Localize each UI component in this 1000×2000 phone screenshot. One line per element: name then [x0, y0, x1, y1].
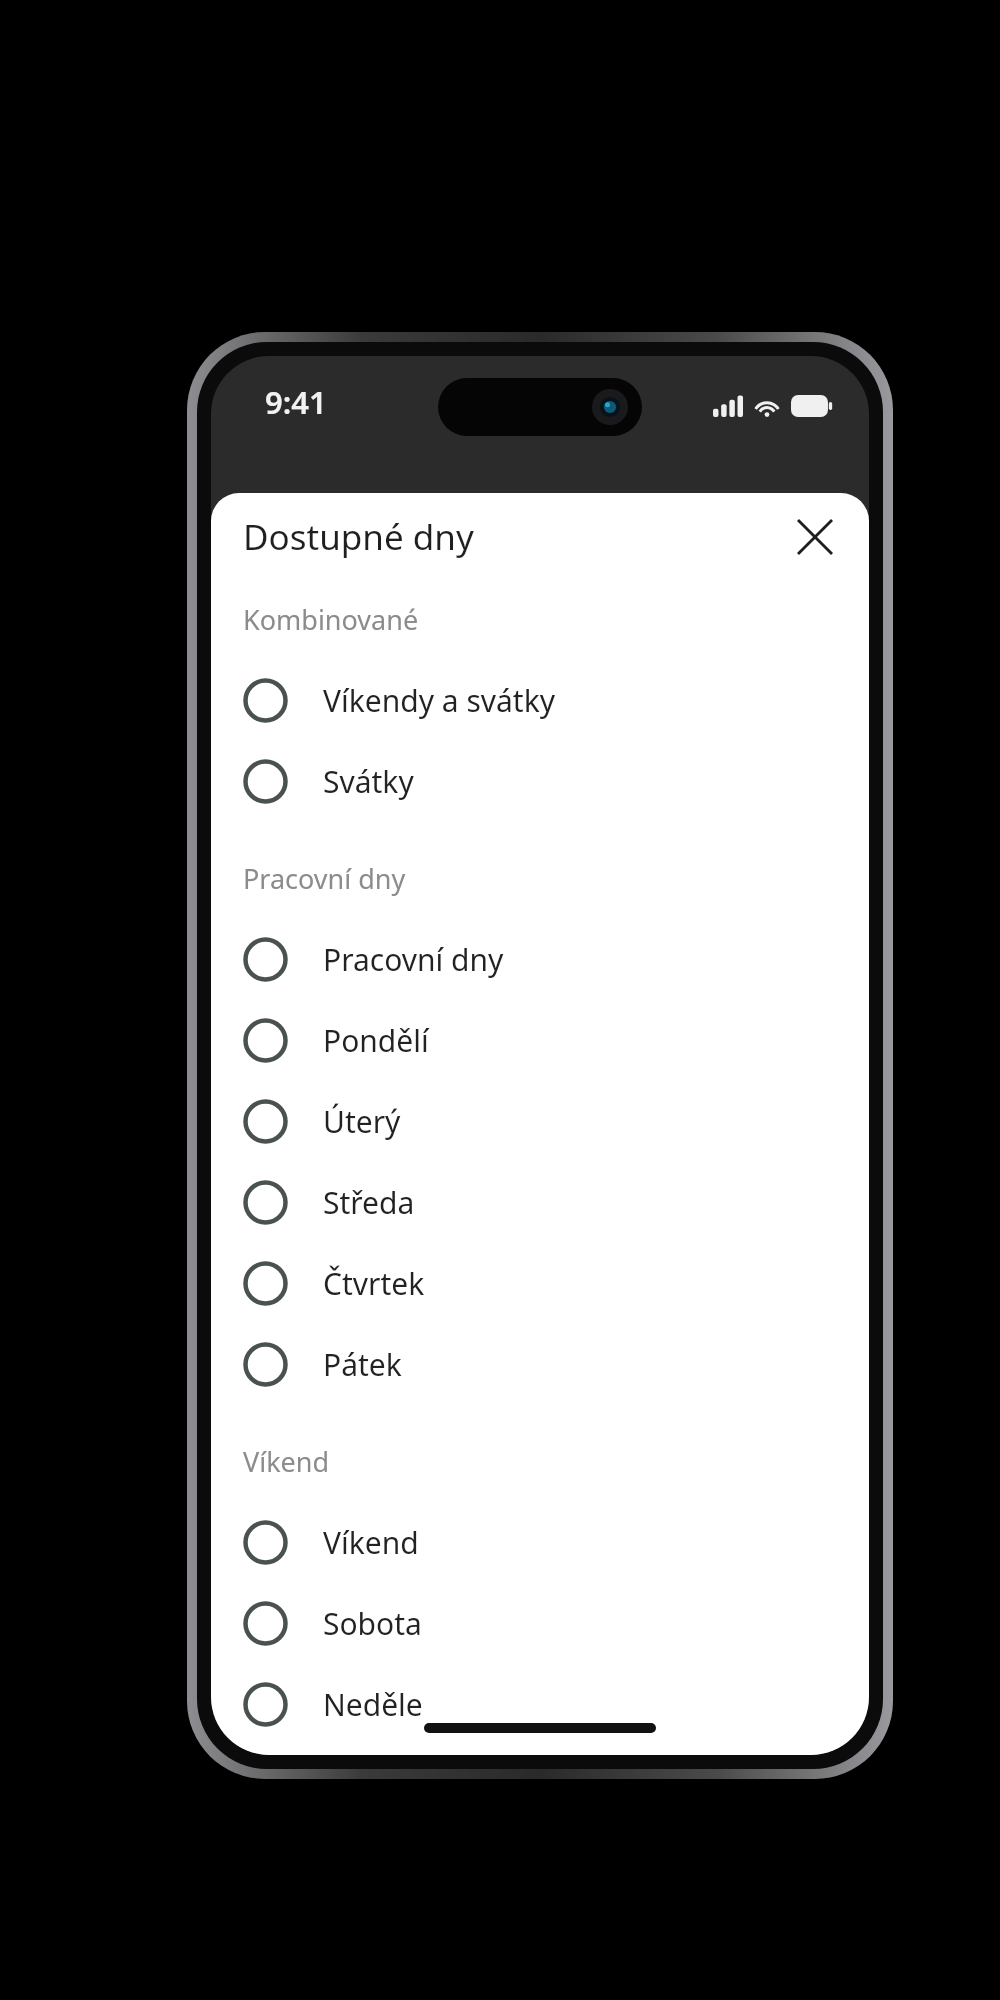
staticText: Neděle [323, 1684, 423, 1725]
staticText: Dostupné dny [243, 513, 783, 561]
staticText: Sobota [323, 1603, 422, 1644]
staticText: Časování HDO [315, 491, 783, 537]
staticText: Pondělí [323, 1020, 429, 1061]
staticText: Víkend [243, 1443, 330, 1480]
button[interactable]: Čtvrtek [211, 1243, 869, 1324]
staticText: Svátky [323, 761, 414, 802]
button[interactable]: Close [783, 505, 847, 569]
staticText: Pracovní dny [243, 860, 406, 897]
button[interactable]: Svátky [211, 741, 869, 822]
button[interactable]: Neděle [211, 1664, 869, 1745]
staticText: 9:41 [265, 381, 327, 423]
button[interactable]: Pracovní dny [211, 919, 869, 1000]
button[interactable]: Středa [211, 1162, 869, 1243]
button[interactable]: Úterý [211, 1081, 869, 1162]
staticText: Středa [323, 1182, 415, 1223]
button[interactable]: Back [245, 488, 297, 540]
staticText: Pracovní dny [323, 939, 504, 980]
staticText: Pátek [323, 1344, 402, 1385]
button[interactable]: Pondělí [211, 1000, 869, 1081]
staticText: Kombinované [243, 601, 419, 638]
button[interactable]: Sobota [211, 1583, 869, 1664]
staticText: Víkendy a svátky [323, 680, 555, 721]
button[interactable]: Víkendy a svátky [211, 660, 869, 741]
staticText: Víkend [323, 1522, 419, 1563]
staticText: Úterý [323, 1101, 401, 1142]
staticText: Čtvrtek [323, 1263, 425, 1304]
button[interactable]: Víkend [211, 1502, 869, 1583]
button[interactable]: Help [783, 488, 835, 540]
button[interactable]: Pátek [211, 1324, 869, 1405]
